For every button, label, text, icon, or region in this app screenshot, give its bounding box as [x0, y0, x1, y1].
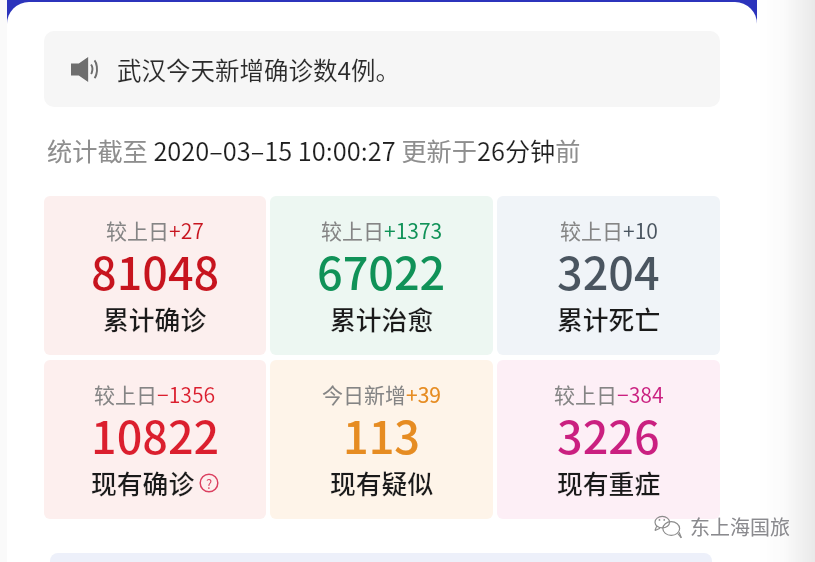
staticText: 67022 [317, 238, 446, 303]
staticText: 较上日−1356 [94, 379, 216, 409]
staticText: 现有确诊 [91, 464, 195, 501]
staticText: 东上海国旅 [690, 512, 790, 541]
staticText: 武汉今天新增确诊数4例。 [117, 52, 401, 87]
staticText: 累计死亡 [557, 300, 661, 337]
staticText: 3204 [557, 238, 660, 303]
button[interactable]: Announcement [44, 31, 720, 107]
staticText: 今日新增+39 [322, 379, 441, 409]
staticText: 10822 [91, 402, 220, 467]
button[interactable]: 今日新增+39 [270, 360, 493, 519]
staticText: 累计确诊 [103, 300, 207, 337]
staticText: 现有疑似 [330, 464, 434, 501]
staticText: 3226 [557, 402, 660, 467]
button[interactable]: 较上日+1373 [270, 196, 493, 355]
staticText: 现有重症 [557, 464, 661, 501]
staticText: 累计治愈 [330, 300, 434, 337]
staticText: 统计截至 2020–03–15 10:00:27 更新于26分钟前 [47, 132, 581, 168]
button[interactable]: 较上日+27 [44, 196, 266, 355]
other: Announcement [71, 57, 97, 82]
button[interactable]: 较上日−384 [497, 360, 720, 519]
staticText: 81048 [91, 238, 220, 303]
button[interactable]: 较上日+10 [497, 196, 720, 355]
staticText: 较上日+27 [106, 215, 204, 245]
button[interactable]: 较上日−1356 [44, 360, 266, 519]
staticText: 较上日+1373 [321, 215, 443, 245]
staticText: 较上日+10 [560, 215, 658, 245]
staticText: 较上日−384 [554, 379, 664, 409]
other: WeChat [655, 516, 683, 538]
button[interactable]: Help [199, 473, 219, 493]
staticText: 113 [343, 402, 420, 467]
staticText: ? [206, 474, 213, 493]
